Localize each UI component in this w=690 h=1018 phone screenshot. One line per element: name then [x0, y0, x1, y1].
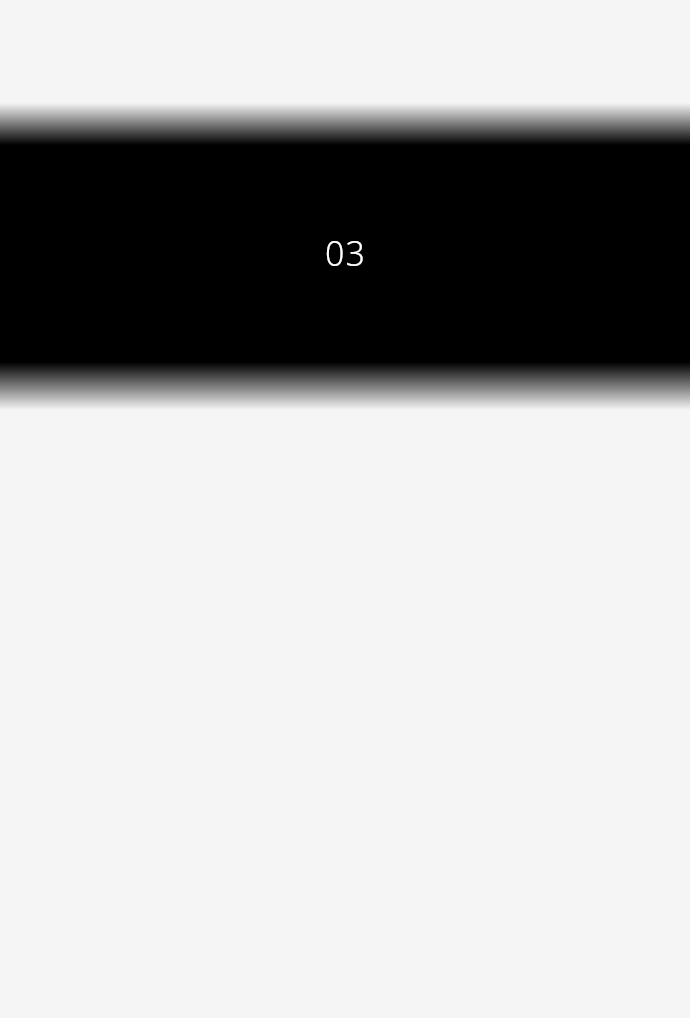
button[interactable]: Chapter 03: [0, 0, 690, 1018]
staticText: 03: [325, 230, 366, 276]
